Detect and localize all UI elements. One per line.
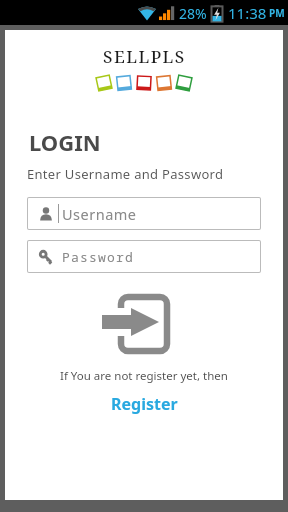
staticText: LOGIN [29, 127, 101, 157]
staticText: PM [269, 6, 285, 20]
button[interactable]: Username [28, 198, 260, 229]
staticText: Enter Username and Password [27, 165, 224, 183]
staticText: Password [62, 248, 135, 266]
button[interactable] [100, 289, 188, 359]
staticText: 28% [179, 4, 207, 23]
button[interactable]: Register [111, 393, 178, 415]
staticText: Username [62, 204, 137, 224]
staticText: If You are not register yet, then [60, 368, 228, 384]
staticText: SELLPLS [103, 45, 186, 68]
button[interactable]: Password [28, 241, 260, 272]
staticText: 11:38 [228, 3, 267, 23]
